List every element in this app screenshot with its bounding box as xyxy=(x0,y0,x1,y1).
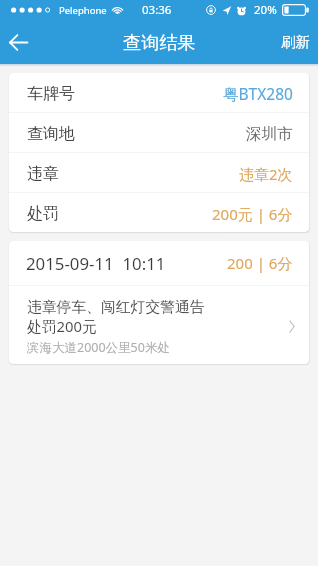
button[interactable]: 2015-09-11 10:11 xyxy=(9,241,309,364)
button[interactable]: 查询地 xyxy=(9,113,309,152)
staticText: Pelephone xyxy=(59,4,107,17)
staticText: 滨海大道2000公里50米处 xyxy=(27,339,170,356)
staticText: 2015-09-11 10:11 xyxy=(26,252,166,275)
staticText: 处罚 xyxy=(27,204,59,224)
staticText: 粤BTX280 xyxy=(223,83,293,104)
staticText: 03:36 xyxy=(142,2,172,18)
staticText: 车牌号 xyxy=(27,84,75,104)
button[interactable]: 车牌号 xyxy=(9,73,309,112)
button[interactable]: Back xyxy=(0,20,36,64)
staticText: 深圳市 xyxy=(246,124,293,144)
staticText: 200 | 6分 xyxy=(227,253,293,273)
staticText: 200元 | 6分 xyxy=(212,204,293,224)
staticText: 违章 xyxy=(27,164,59,184)
staticText: 违章停车、闯红灯交警通告 处罚200元 xyxy=(27,298,205,336)
staticText: 查询地 xyxy=(27,124,75,144)
button[interactable]: 处罚 xyxy=(9,193,309,232)
staticText: 查询结果 xyxy=(123,31,196,54)
staticText: 20% xyxy=(254,2,277,18)
button[interactable]: 刷新 xyxy=(273,23,318,61)
staticText: 刷新 xyxy=(281,33,310,51)
button[interactable]: 违章 xyxy=(9,153,309,192)
staticText: 违章2次 xyxy=(239,164,293,184)
